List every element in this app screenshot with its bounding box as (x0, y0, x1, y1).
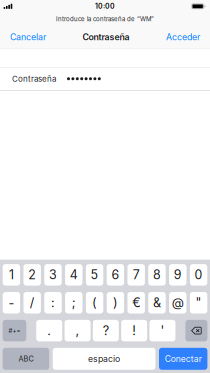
button[interactable]: ABC (3, 348, 49, 370)
staticText: Contraseña (12, 74, 56, 84)
staticText: / (30, 295, 35, 310)
staticText: ; (72, 295, 76, 310)
staticText: - (8, 295, 14, 310)
button[interactable]: 1 (3, 264, 20, 286)
button[interactable]: ' (149, 320, 175, 341)
button[interactable]: espacio (53, 348, 155, 370)
staticText: 7 (133, 267, 140, 282)
staticText: ) (113, 295, 118, 310)
button[interactable]: Acceder (166, 26, 210, 48)
button[interactable]: ! (121, 320, 147, 341)
button[interactable]: " (190, 292, 207, 313)
button[interactable]: & (148, 292, 166, 313)
staticText: 5 (91, 267, 99, 282)
button[interactable]: @ (169, 292, 186, 313)
staticText: 8 (153, 267, 161, 282)
button[interactable]: € (127, 292, 145, 313)
button[interactable]: 7 (127, 264, 145, 286)
staticText: ' (160, 323, 164, 338)
button[interactable]: 0 (190, 264, 207, 286)
staticText: Cancelar (10, 32, 46, 42)
button[interactable]: Cancelar (0, 26, 46, 48)
button[interactable]: ( (86, 292, 103, 313)
staticText: ? (103, 323, 109, 338)
staticText: espacio (88, 354, 120, 364)
staticText: ( (92, 295, 97, 310)
button[interactable]: #+= (3, 320, 26, 341)
staticText: ABC (18, 354, 33, 363)
staticText: 3 (49, 267, 57, 282)
button[interactable]: 6 (107, 264, 124, 286)
staticText: 6 (111, 267, 119, 282)
button[interactable]: : (44, 292, 62, 313)
button[interactable]: 5 (86, 264, 103, 286)
staticText: #+= (8, 327, 20, 334)
button[interactable]: Contraseña (0, 67, 210, 90)
button[interactable]: 8 (148, 264, 166, 286)
staticText: " (196, 295, 202, 310)
staticText: Conectar (165, 354, 202, 364)
button[interactable]: 4 (65, 264, 82, 286)
staticText: Acceder (166, 32, 200, 42)
staticText: & (153, 295, 161, 310)
staticText: : (51, 295, 55, 310)
staticText: € (132, 295, 140, 310)
staticText: , (76, 323, 80, 338)
button[interactable]: 3 (44, 264, 62, 286)
button[interactable]: ? (93, 320, 119, 341)
staticText: Introduce la contraseña de “WM” (56, 15, 154, 23)
button[interactable]: , (65, 320, 91, 341)
staticText: . (47, 323, 51, 338)
staticText: Contraseña (82, 32, 129, 42)
staticText: 10:00 (95, 2, 115, 10)
staticText: 2 (28, 267, 36, 282)
staticText: 1 (9, 267, 14, 282)
button[interactable]: ; (65, 292, 82, 313)
button[interactable]: 9 (169, 264, 186, 286)
button[interactable]: 2 (23, 264, 41, 286)
staticText: 0 (195, 267, 203, 282)
button[interactable]: / (23, 292, 41, 313)
button[interactable]: Borrar (185, 320, 207, 341)
staticText: 4 (70, 267, 78, 282)
staticText: 9 (174, 267, 182, 282)
staticText: @ (172, 295, 184, 310)
staticText: ! (132, 323, 136, 338)
button[interactable]: - (3, 292, 20, 313)
button[interactable]: Conectar (159, 348, 207, 370)
button[interactable]: . (36, 320, 62, 341)
button[interactable]: ) (107, 292, 124, 313)
